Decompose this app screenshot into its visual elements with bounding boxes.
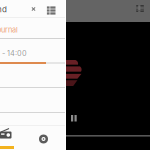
staticText: Aufnehmend: [0, 4, 7, 14]
staticText: 13:00 - 14:00: [0, 49, 27, 58]
button[interactable]: Suche löschen: [29, 5, 37, 13]
button[interactable]: Radio: [0, 125, 21, 150]
button[interactable]: Aufnehmend: [0, 0, 65, 17]
staticText: Radio Journal: [0, 25, 18, 34]
button[interactable]: Programmübersicht: [134, 2, 146, 14]
button[interactable]: Ansicht wechseln: [45, 4, 57, 16]
button[interactable]: 13:00 - 14:00: [0, 39, 65, 63]
button[interactable]: Aufnahmen: [33, 125, 55, 150]
button[interactable]: Radio Journal: [0, 18, 65, 38]
button[interactable]: Pause: [66, 111, 82, 125]
